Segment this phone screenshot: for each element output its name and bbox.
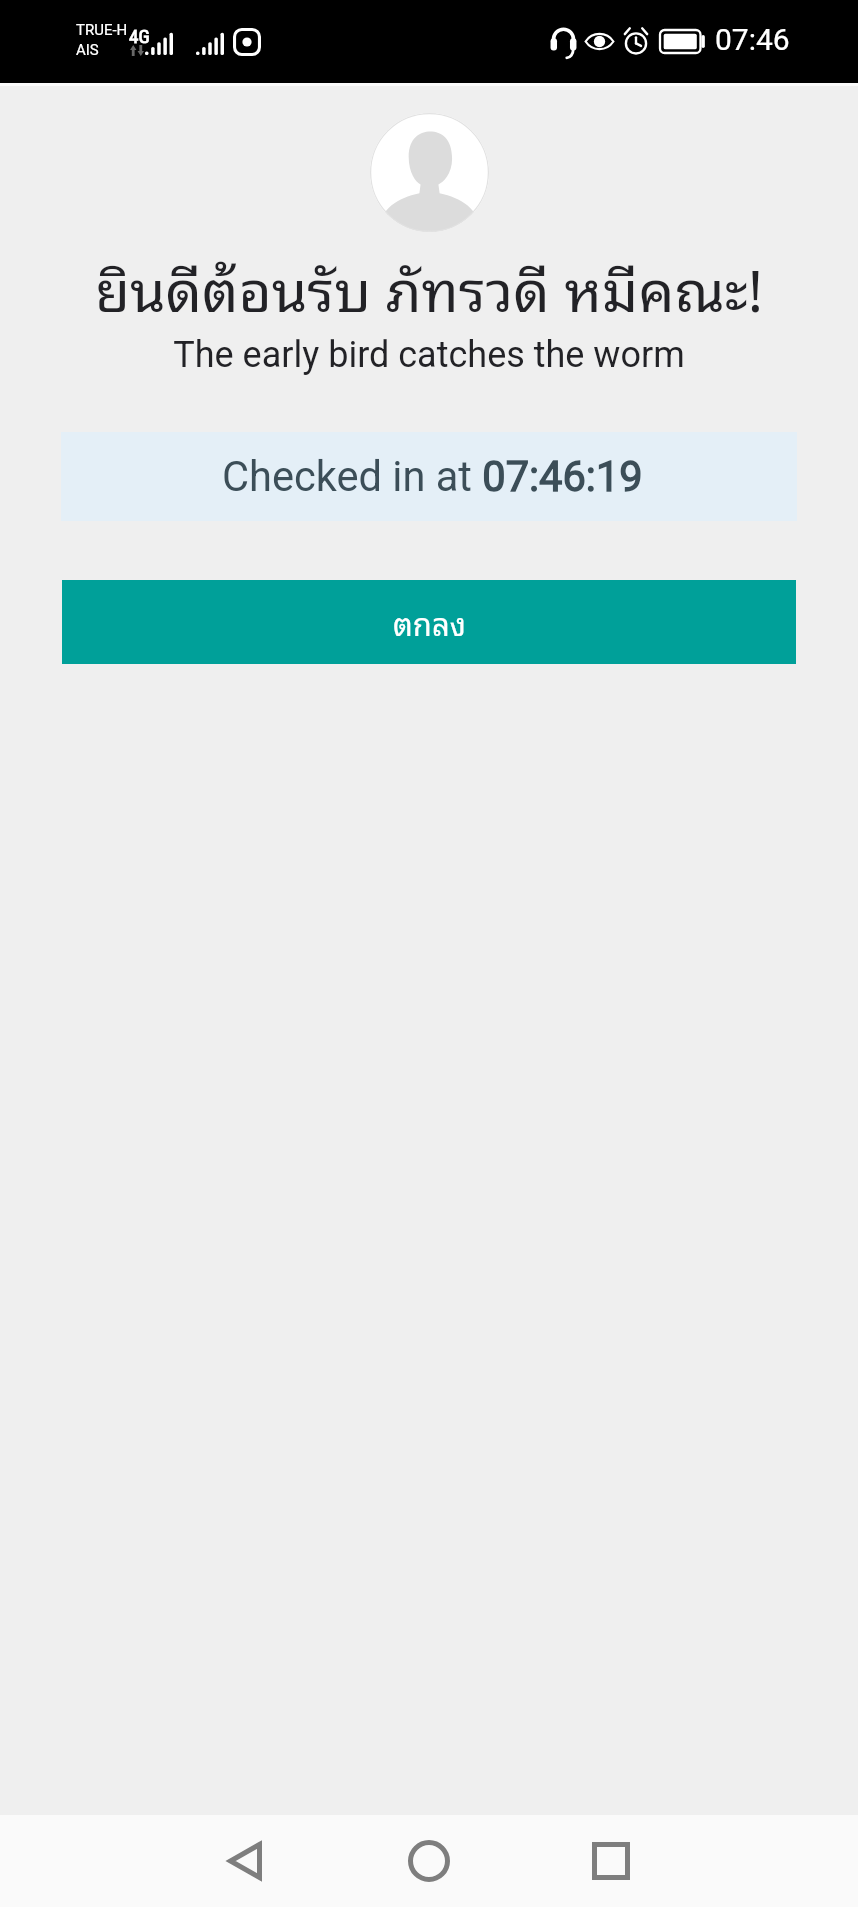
staticText: Checked in at 07:46:19 <box>222 452 643 501</box>
staticText: AIS <box>76 41 99 59</box>
button[interactable]: Home <box>392 1824 466 1898</box>
staticText: TRUE-H <box>76 21 128 39</box>
staticText: ตกลง <box>393 597 466 647</box>
button[interactable]: ตกลง <box>62 580 796 664</box>
staticText: 07:46 <box>715 22 790 57</box>
button[interactable]: Recents <box>574 1824 648 1898</box>
staticText: ยินดีต้อนรับ ภัทรวดี หมีคณะ! <box>0 241 858 332</box>
button[interactable]: Back <box>208 1824 282 1898</box>
staticText: 4G <box>129 25 150 47</box>
staticText: The early bird catches the worm <box>0 334 858 376</box>
